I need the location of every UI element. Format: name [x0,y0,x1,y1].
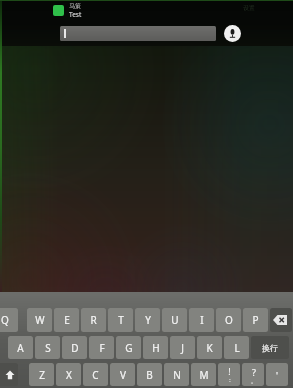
staticText: A [17,341,24,355]
staticText: U [171,313,179,327]
button[interactable]: R [81,308,106,332]
staticText: N [173,368,181,382]
button[interactable]: Q [0,308,18,332]
staticText: 设置 [243,4,255,12]
button[interactable]: ? [242,363,264,386]
button[interactable]: 马策 [53,2,82,19]
button[interactable]: Shift [0,363,18,386]
button[interactable]: P [243,308,268,332]
button[interactable]: L [224,336,249,359]
staticText: W [35,313,45,327]
staticText: E [64,313,70,327]
button[interactable]: Backspace [270,308,292,332]
staticText: 。 [251,378,256,384]
staticText: P [252,313,259,327]
staticText: J [181,341,184,355]
button[interactable]: C [83,363,108,386]
staticText: ! [228,365,231,377]
staticText: C [92,368,99,382]
staticText: G [125,341,133,355]
button[interactable]: I [189,308,214,332]
staticText: Q [1,313,9,327]
staticText: T [118,313,124,327]
staticText: H [152,341,160,355]
button[interactable]: W [27,308,52,332]
staticText: V [120,368,126,382]
staticText: Test [69,10,82,19]
staticText: R [90,313,97,327]
button[interactable]: G [116,336,141,359]
button[interactable]: Voice input [224,25,241,42]
button[interactable]: 换行 [251,336,289,359]
staticText: S [45,341,51,355]
button[interactable]: A [8,336,33,359]
staticText: X [66,368,72,382]
button[interactable]: J [170,336,195,359]
staticText: Z [39,368,45,382]
staticText: Y [145,313,151,327]
staticText: K [206,341,213,355]
staticText: D [71,341,79,355]
button[interactable]: O [216,308,241,332]
button[interactable]: Z [29,363,54,386]
staticText: L [234,341,240,355]
staticText: O [225,313,233,327]
staticText: 换行 [262,343,278,353]
button[interactable]: H [143,336,168,359]
button[interactable]: ' [266,363,288,386]
button[interactable]: E [54,308,79,332]
button[interactable]: X [56,363,81,386]
button[interactable]: D [62,336,87,359]
button[interactable]: K [197,336,222,359]
button[interactable]: V [110,363,135,386]
staticText: ? [252,366,256,378]
button[interactable]: N [164,363,189,386]
staticText: F [99,341,105,355]
button[interactable]: Y [135,308,160,332]
staticText: ' [276,369,279,381]
button[interactable]: F [89,336,114,359]
button[interactable] [60,26,216,41]
staticText: 马策 [69,2,81,10]
button[interactable]: M [191,363,216,386]
staticText: I [200,313,204,327]
button[interactable]: T [108,308,133,332]
button[interactable]: S [35,336,60,359]
staticText: M [199,368,209,382]
button[interactable]: B [137,363,162,386]
button[interactable]: U [162,308,187,332]
button[interactable]: ! [218,363,240,386]
staticText: : [229,377,231,384]
staticText: B [146,368,153,382]
